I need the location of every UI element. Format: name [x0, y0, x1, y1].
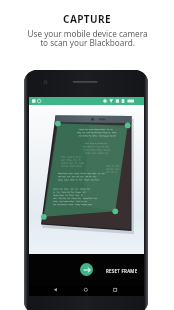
button[interactable]: RESET FRAME — [104, 265, 139, 276]
staticText: Use your mobile device camera to scan yo… — [27, 28, 148, 48]
staticText: CAPTURE — [63, 12, 111, 26]
button[interactable]: Continue — [80, 263, 93, 276]
staticText: RESET FRAME — [106, 268, 138, 274]
